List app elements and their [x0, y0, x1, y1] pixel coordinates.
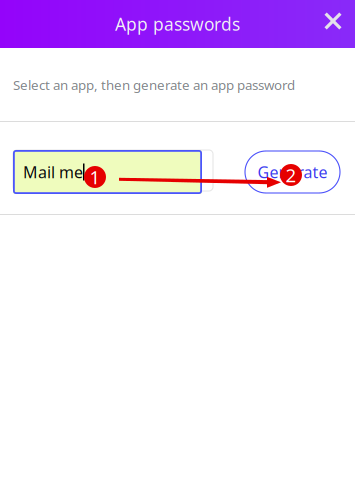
staticText: Generate	[257, 161, 327, 183]
button[interactable]: Close	[311, 1, 355, 41]
button[interactable]: Mail me	[13, 150, 202, 194]
button[interactable]: Generate	[245, 151, 340, 193]
staticText: App passwords	[115, 12, 240, 35]
staticText: Select an app, then generate an app pass…	[13, 76, 295, 94]
staticText: 2	[285, 163, 296, 187]
staticText: 1	[89, 165, 100, 189]
staticText: Mail me	[23, 161, 83, 183]
